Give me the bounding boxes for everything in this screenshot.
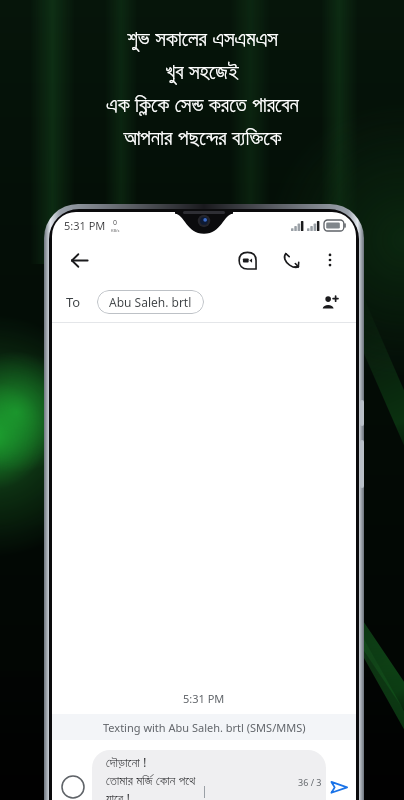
button[interactable]: Call [276, 245, 306, 275]
staticText: খুব সহজেই [165, 57, 239, 86]
button[interactable]: Add person [316, 289, 342, 315]
button[interactable]: Abu Saleh. brtl [97, 290, 204, 314]
button[interactable]: Send [326, 774, 352, 800]
staticText: 0 [113, 218, 118, 228]
staticText: যাবে ! [106, 789, 130, 800]
button[interactable]: Video call [232, 245, 262, 275]
staticText: তোমার মর্জি কোন পথে [106, 771, 196, 789]
staticText: Abu Saleh. brtl [109, 294, 192, 310]
staticText: দৌড়ানো ! [106, 753, 147, 771]
staticText: আপনার পছন্দের ব্যক্তিকে [123, 123, 282, 152]
staticText: 5:31 PM [183, 691, 225, 706]
staticText: To [66, 293, 81, 311]
button[interactable]: দৌড়ানো ! [92, 750, 326, 800]
button[interactable]: More options [316, 246, 344, 274]
staticText: 36 / 3 [298, 776, 322, 788]
staticText: 5:31 PM [64, 218, 106, 233]
staticText: শুভ সকালের এসএমএস [127, 24, 278, 53]
button[interactable]: Attach [60, 774, 86, 800]
staticText: Texting with Abu Saleh. brtl (SMS/MMS) [103, 720, 306, 735]
staticText: এক ক্লিকে সেন্ড করতে পারবেন [106, 90, 299, 119]
staticText: KB/s [111, 228, 120, 233]
button[interactable]: Back [64, 245, 94, 275]
